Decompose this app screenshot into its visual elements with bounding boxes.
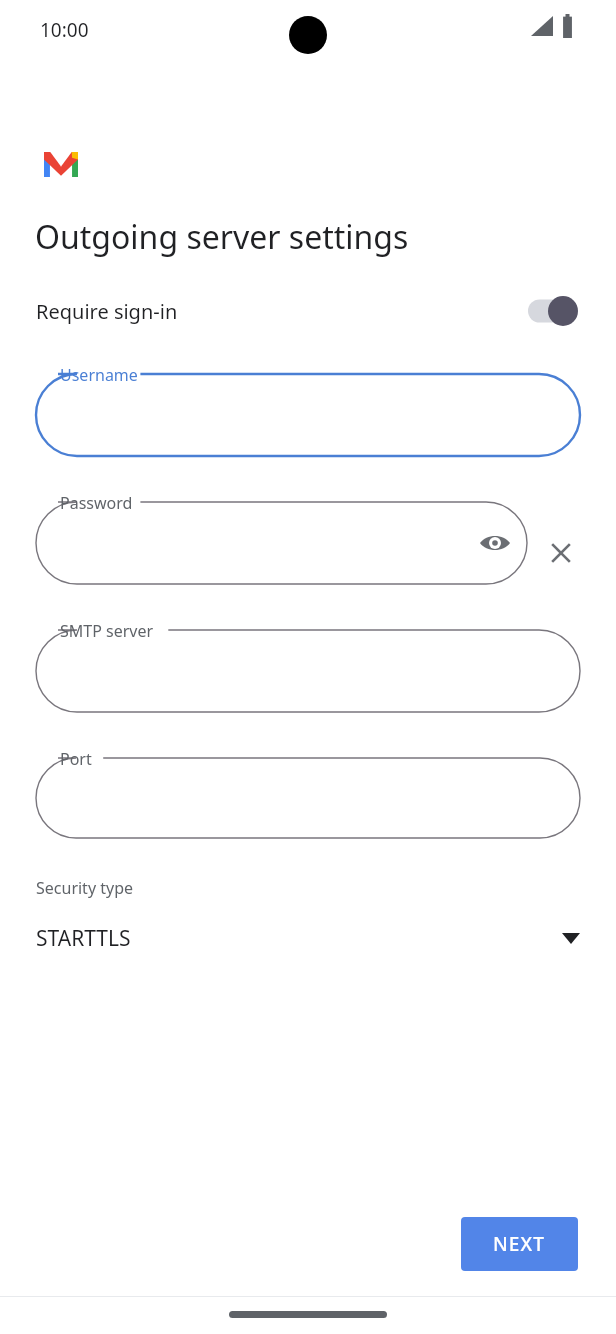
staticText: STARTTLS [36, 924, 131, 953]
button[interactable]: Username [36, 362, 580, 468]
staticText: Password [60, 492, 133, 514]
staticText: Port [60, 748, 92, 770]
button[interactable]: SMTP server [36, 618, 580, 724]
button[interactable]: Password [36, 490, 527, 596]
staticText: Username [60, 364, 138, 386]
staticText: SMTP server [60, 620, 154, 642]
button[interactable]: NEXT [461, 1217, 578, 1271]
staticText: Security type [36, 877, 134, 899]
button[interactable]: Port [36, 746, 580, 850]
button[interactable]: STARTTLS [0, 912, 616, 964]
button[interactable]: Clear password [537, 529, 585, 577]
staticText: NEXT [493, 1231, 546, 1257]
staticText: 10:00 [40, 17, 89, 43]
button[interactable]: Require sign-in toggle [528, 295, 578, 327]
button[interactable]: Show password [471, 519, 519, 567]
staticText: Outgoing server settings [35, 215, 409, 259]
button[interactable]: Require sign-in [0, 286, 616, 336]
staticText: Require sign-in [36, 298, 178, 325]
